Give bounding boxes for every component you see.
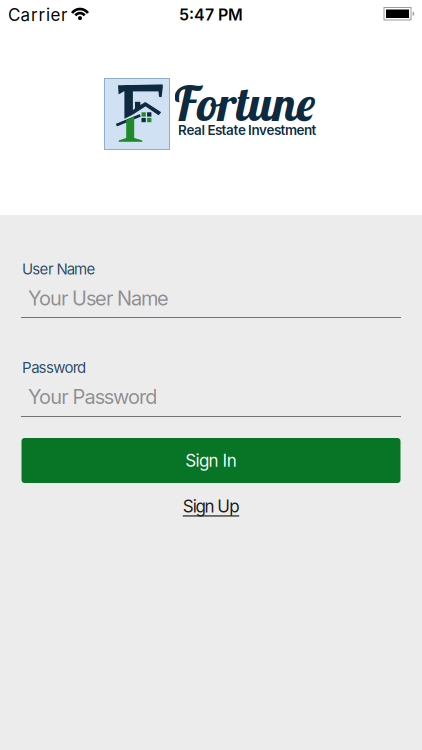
staticText: 5:47 PM bbox=[179, 5, 243, 24]
staticText: Your User Name bbox=[28, 286, 169, 310]
staticText: Sign In bbox=[185, 450, 237, 471]
button[interactable]: Sign In bbox=[21, 438, 400, 483]
staticText: Fortune bbox=[171, 73, 315, 133]
staticText: Sign Up bbox=[183, 496, 239, 517]
staticText: Your Password bbox=[28, 384, 157, 409]
staticText: Carrier bbox=[8, 4, 67, 25]
staticText: User Name bbox=[22, 260, 95, 278]
button[interactable]: Sign Up bbox=[183, 496, 239, 517]
staticText: Password bbox=[22, 358, 86, 377]
button[interactable]: User Name text field bbox=[21, 286, 401, 332]
staticText: Real Estate Investment bbox=[178, 122, 316, 138]
button[interactable]: Password text field bbox=[21, 384, 401, 430]
